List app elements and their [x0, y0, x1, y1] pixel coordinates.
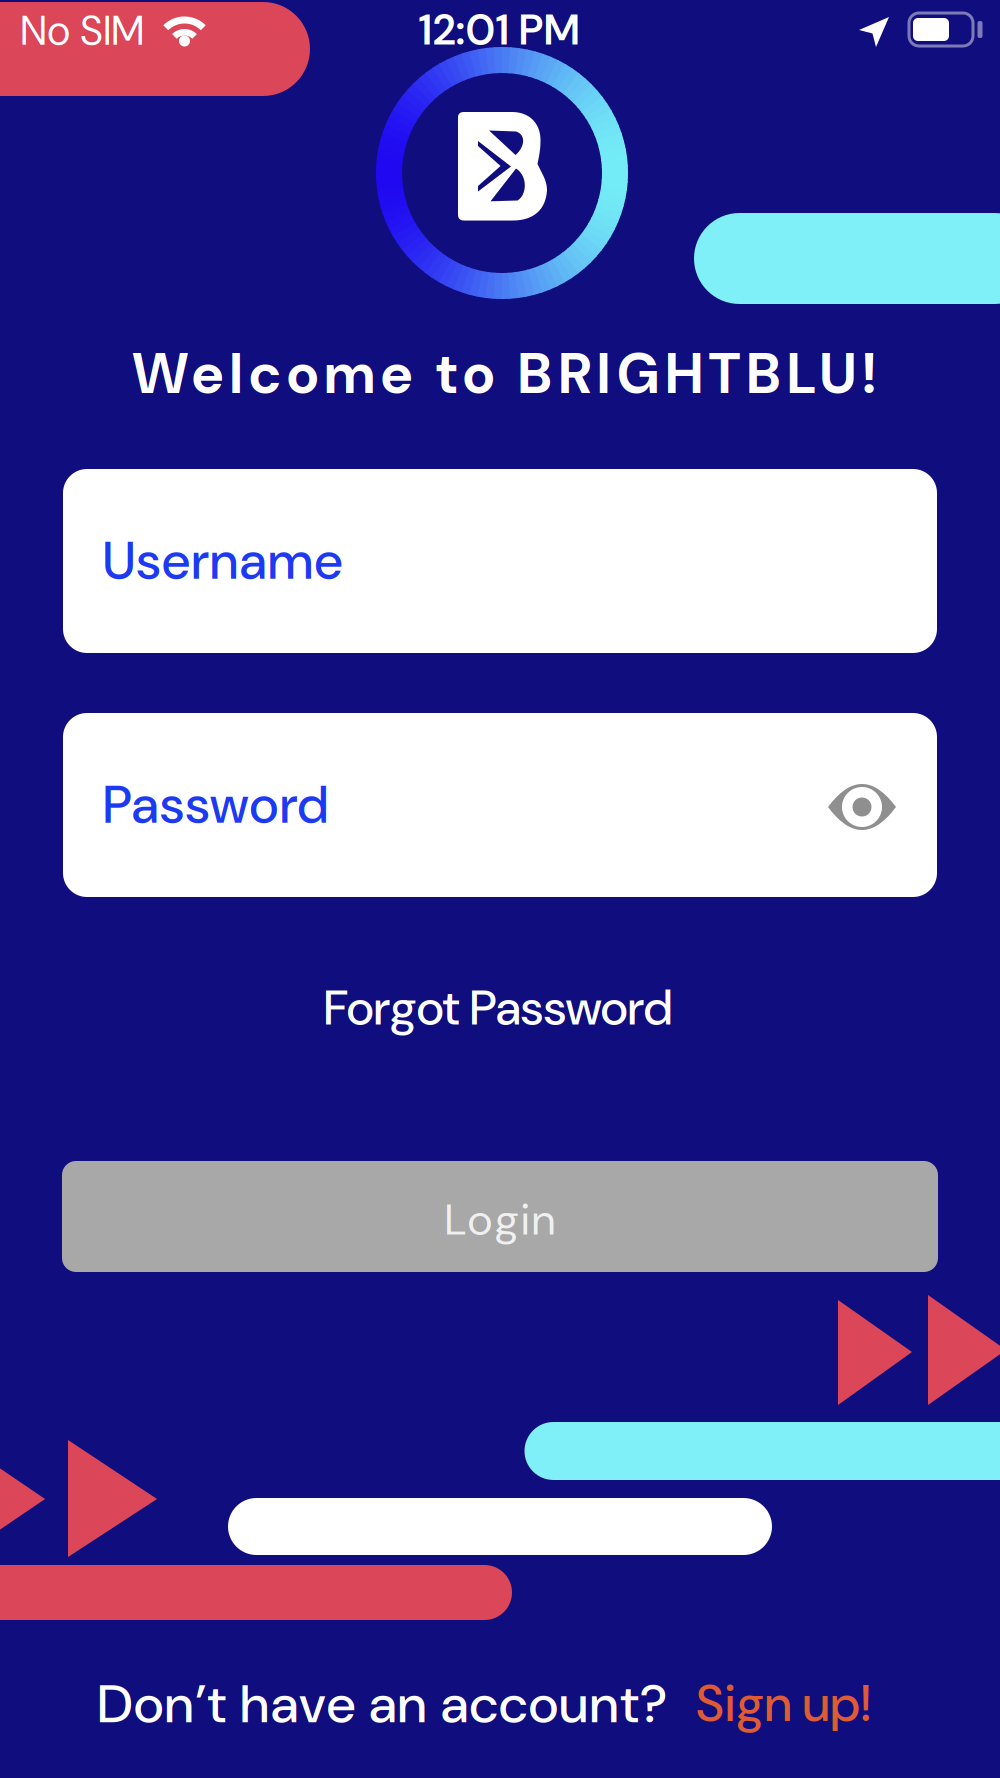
staticText: No SIM [20, 4, 144, 57]
button[interactable]: Sign up! [696, 1671, 870, 1737]
staticText: Sign up! [696, 1671, 870, 1737]
button[interactable]: Forgot Password [323, 976, 672, 1040]
staticText: Username [103, 527, 342, 595]
staticText: Password [103, 771, 328, 839]
button[interactable]: Password [63, 713, 937, 897]
button[interactable]: Login [62, 1161, 938, 1272]
staticText: Welcome to BRIGHTBLU! [132, 337, 875, 410]
staticText: Login [444, 1191, 555, 1248]
staticText: 12:01 PM [418, 2, 579, 58]
button[interactable]: Username [63, 469, 937, 653]
button[interactable]: Show password [807, 762, 917, 852]
staticText: Forgot Password [323, 976, 672, 1040]
staticText: Don’t have an account? [97, 1669, 668, 1739]
